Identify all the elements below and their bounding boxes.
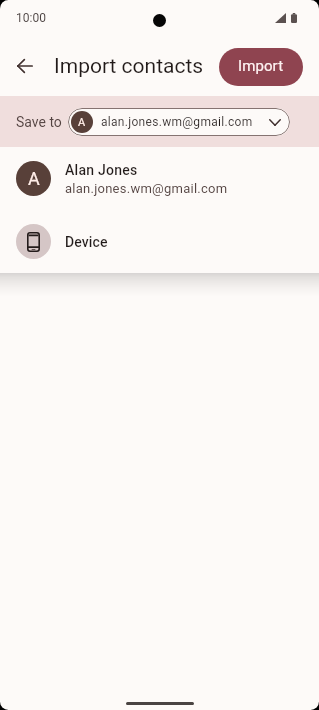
button[interactable]: Back bbox=[1, 44, 49, 92]
staticText: Save to bbox=[16, 114, 62, 130]
button[interactable]: Device bbox=[0, 210, 319, 273]
staticText: A bbox=[28, 168, 40, 189]
staticText: alan.jones.wm@gmail.com bbox=[65, 181, 228, 196]
button[interactable]: Import bbox=[219, 48, 303, 86]
staticText: Import bbox=[238, 57, 284, 75]
staticText: A bbox=[78, 116, 86, 129]
staticText: Import contacts bbox=[54, 54, 204, 79]
staticText: 10:00 bbox=[16, 11, 46, 25]
staticText: Alan Jones bbox=[65, 162, 138, 178]
staticText: Device bbox=[65, 234, 108, 250]
staticText: alan.jones.wm@gmail.com bbox=[101, 115, 253, 129]
button[interactable]: A bbox=[0, 147, 319, 210]
button[interactable]: A bbox=[68, 108, 290, 136]
